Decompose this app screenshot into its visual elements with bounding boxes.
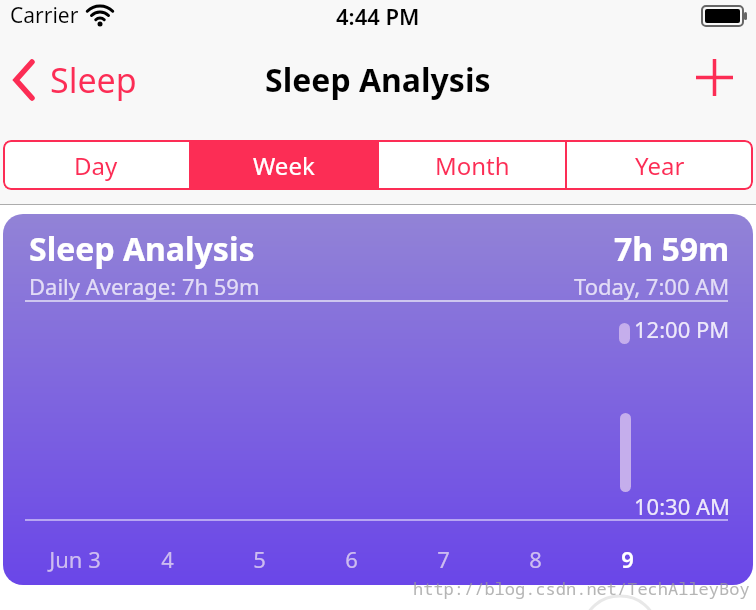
staticText: Today, 7:00 AM (574, 271, 730, 301)
staticText: 9 (621, 544, 634, 574)
staticText: Carrier (10, 1, 79, 30)
staticText: Daily Average: 7h 59m (29, 271, 260, 301)
staticText: 4:44 PM (336, 1, 420, 31)
staticText: 6 (345, 544, 358, 574)
staticText: 8 (529, 544, 542, 574)
staticText: Jun 3 (49, 544, 101, 574)
button[interactable]: Month (379, 140, 565, 190)
staticText: Sleep Analysis (265, 58, 491, 102)
staticText: 4 (161, 544, 174, 574)
staticText: 12:00 PM (634, 314, 730, 344)
staticText: Day (74, 149, 118, 182)
button[interactable]: Week (191, 140, 377, 190)
button[interactable] (694, 60, 734, 100)
staticText: 7 (437, 544, 450, 574)
staticText: 5 (253, 544, 266, 574)
staticText: Sleep Analysis (29, 227, 255, 271)
button[interactable]: Year (567, 140, 753, 190)
staticText: Month (435, 149, 510, 182)
staticText: 10:30 AM (634, 491, 730, 521)
staticText: http://blog.csdn.net/TechAlleyBoy (413, 577, 750, 600)
staticText: 7h 59m (614, 227, 730, 271)
staticText: Year (635, 149, 685, 182)
button[interactable]: Sleep (12, 57, 137, 103)
staticText: Week (253, 149, 315, 182)
button[interactable]: Day (3, 140, 189, 190)
staticText: Sleep (50, 57, 137, 103)
